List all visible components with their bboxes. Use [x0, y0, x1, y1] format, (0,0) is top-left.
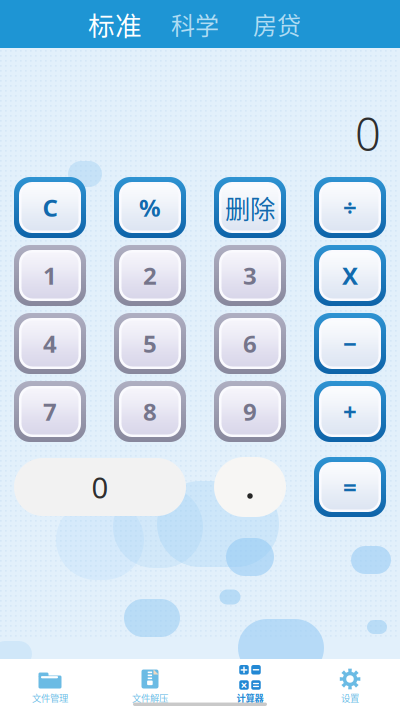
- button[interactable]: 3: [214, 245, 286, 306]
- button[interactable]: 5: [114, 313, 186, 374]
- staticText: X: [342, 260, 358, 291]
- staticText: 标准: [88, 5, 142, 43]
- staticText: 8: [143, 396, 157, 427]
- button[interactable]: 1: [14, 245, 86, 306]
- staticText: 删除: [225, 189, 275, 226]
- button[interactable]: ÷: [314, 177, 386, 238]
- button[interactable]: 科学: [167, 0, 223, 48]
- button[interactable]: 8: [114, 381, 186, 442]
- button[interactable]: 7: [14, 381, 86, 442]
- staticText: −: [343, 328, 357, 359]
- staticText: 1: [43, 260, 57, 291]
- button[interactable]: %: [114, 177, 186, 238]
- staticText: 9: [243, 396, 257, 427]
- staticText: %: [139, 192, 161, 223]
- button[interactable]: 标准: [84, 0, 146, 48]
- staticText: ÷: [343, 192, 357, 223]
- staticText: ×: [240, 677, 247, 693]
- button[interactable]: =: [314, 457, 386, 517]
- button[interactable]: ×: [200, 659, 300, 699]
- staticText: =: [343, 471, 357, 503]
- staticText: 文件管理: [32, 691, 68, 704]
- staticText: C: [42, 192, 57, 223]
- button[interactable]: 2: [114, 245, 186, 306]
- button[interactable]: +: [314, 381, 386, 442]
- button[interactable]: 文件解压: [100, 659, 200, 699]
- button[interactable]: 0: [14, 458, 186, 516]
- staticText: 0: [91, 467, 108, 506]
- button[interactable]: 删除: [214, 177, 286, 238]
- button[interactable]: 4: [14, 313, 86, 374]
- staticText: 5: [143, 328, 157, 359]
- button[interactable]: [214, 457, 286, 517]
- staticText: 房贷: [253, 7, 301, 41]
- button[interactable]: C: [14, 177, 86, 238]
- staticText: 计算器: [236, 691, 263, 704]
- staticText: 2: [143, 260, 157, 291]
- staticText: 4: [43, 328, 57, 359]
- staticText: 7: [43, 396, 57, 427]
- button[interactable]: 9: [214, 381, 286, 442]
- staticText: 6: [243, 328, 257, 359]
- button[interactable]: X: [314, 245, 386, 306]
- staticText: 文件解压: [132, 691, 168, 704]
- staticText: 科学: [171, 7, 219, 41]
- button[interactable]: 文件管理: [0, 659, 100, 699]
- staticText: 3: [243, 260, 257, 291]
- staticText: +: [343, 396, 357, 427]
- button[interactable]: 6: [214, 313, 286, 374]
- button[interactable]: 设置: [300, 659, 400, 699]
- staticText: 设置: [341, 691, 359, 704]
- staticText: 0: [355, 103, 381, 164]
- button[interactable]: −: [314, 313, 386, 374]
- button[interactable]: 房贷: [249, 0, 305, 48]
